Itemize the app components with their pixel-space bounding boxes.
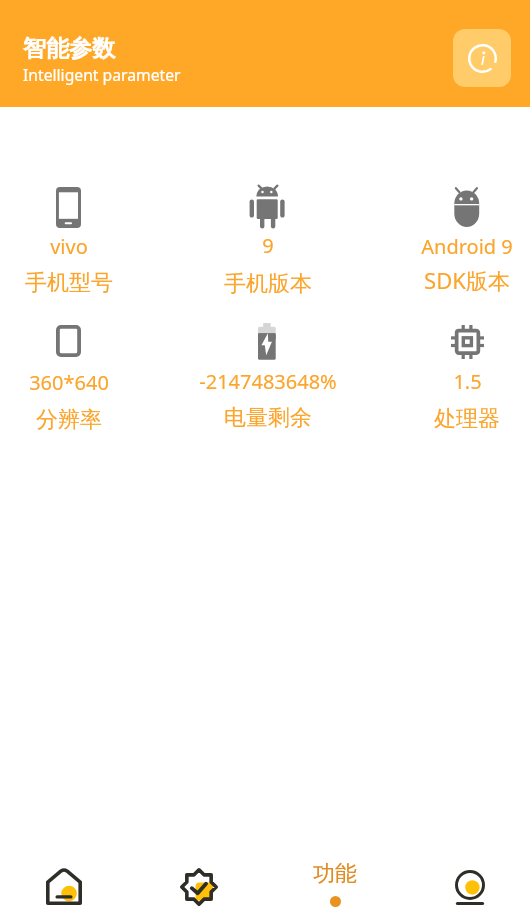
button[interactable]: Info — [453, 29, 511, 87]
staticText: Android 9 — [421, 233, 513, 260]
staticText: 智能参数 — [23, 34, 115, 63]
button[interactable]: 1.5 — [369, 310, 530, 443]
button[interactable]: -2147483648% — [170, 310, 366, 441]
staticText: SDK版本 — [424, 265, 510, 295]
button[interactable]: 9 — [170, 174, 366, 306]
staticText: 电量剩余 — [224, 404, 312, 432]
staticText: vivo — [50, 233, 88, 260]
staticText: 处理器 — [434, 405, 500, 433]
button[interactable]: 功能 — [269, 849, 401, 920]
staticText: 手机版本 — [224, 270, 312, 298]
staticText: 手机型号 — [25, 269, 113, 297]
button[interactable]: Profile — [404, 849, 530, 920]
staticText: Intelligent parameter — [23, 64, 181, 85]
staticText: 功能 — [313, 860, 357, 888]
staticText: 360*640 — [29, 369, 109, 396]
button[interactable]: Android 9 — [369, 175, 530, 306]
button[interactable]: Verified — [133, 849, 265, 920]
button[interactable]: 360*640 — [0, 309, 167, 442]
staticText: -2147483648% — [199, 368, 337, 395]
staticText: 分辨率 — [36, 406, 102, 434]
staticText: 1.5 — [453, 368, 482, 395]
staticText: 9 — [262, 232, 274, 259]
button[interactable]: Home — [0, 849, 130, 920]
button[interactable]: vivo — [0, 175, 167, 307]
